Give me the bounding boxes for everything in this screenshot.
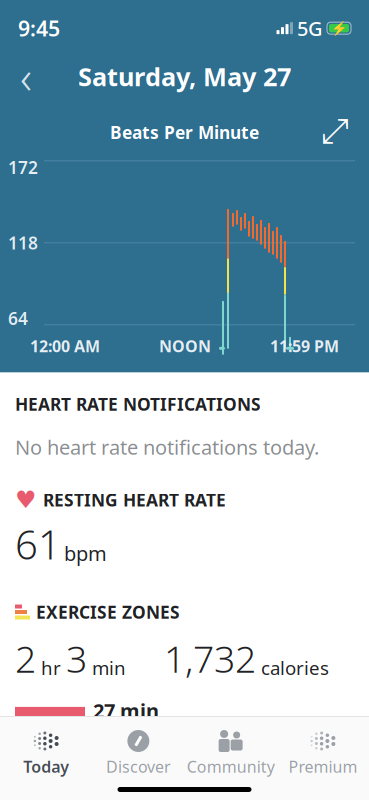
- staticText: Discover: [106, 756, 171, 777]
- staticText: Today: [23, 756, 69, 777]
- staticText: hr: [36, 655, 66, 680]
- staticText: EXERCISE ZONES: [36, 600, 180, 623]
- staticText: ⚡: [330, 20, 347, 36]
- staticText: peak: [93, 724, 133, 747]
- staticText: 5G: [297, 15, 323, 41]
- staticText: min: [87, 655, 126, 680]
- staticText: cardio: [220, 781, 270, 800]
- staticText: bpm: [64, 540, 107, 567]
- staticText: RESTING HEART RATE: [43, 488, 226, 511]
- staticText: 118: [8, 231, 38, 254]
- button[interactable]: Back: [6, 56, 46, 96]
- button[interactable]: Premium: [277, 723, 369, 783]
- staticText: ‹: [20, 46, 32, 106]
- button[interactable]: Community: [184, 723, 277, 783]
- staticText: Premium: [288, 756, 357, 777]
- staticText: 27 min: [93, 697, 159, 724]
- staticText: Saturday, May 27: [78, 59, 291, 93]
- staticText: No heart rate notifications today.: [15, 434, 319, 460]
- button[interactable]: Discover: [92, 723, 184, 783]
- staticText: NOON: [159, 335, 211, 356]
- staticText: 11:59 PM: [270, 335, 339, 356]
- staticText: 64: [8, 307, 28, 330]
- staticText: 9:45: [18, 14, 60, 42]
- staticText: 172: [8, 156, 38, 179]
- staticText: 3: [66, 633, 87, 683]
- staticText: 1,732: [164, 633, 256, 683]
- staticText: 12:00 AM: [30, 335, 100, 356]
- staticText: 1 hr 18 min: [220, 755, 329, 781]
- staticText: ♥: [15, 486, 37, 513]
- staticText: ⤢: [321, 115, 349, 149]
- staticText: calories: [256, 655, 329, 680]
- button[interactable]: Expand chart: [315, 112, 355, 152]
- staticText: HEART RATE NOTIFICATIONS: [15, 393, 261, 416]
- staticText: 61: [15, 517, 61, 570]
- staticText: 2: [15, 633, 36, 683]
- staticText: Community: [187, 756, 275, 777]
- staticText: Beats Per Minute: [110, 121, 259, 144]
- button[interactable]: Today: [0, 723, 92, 783]
